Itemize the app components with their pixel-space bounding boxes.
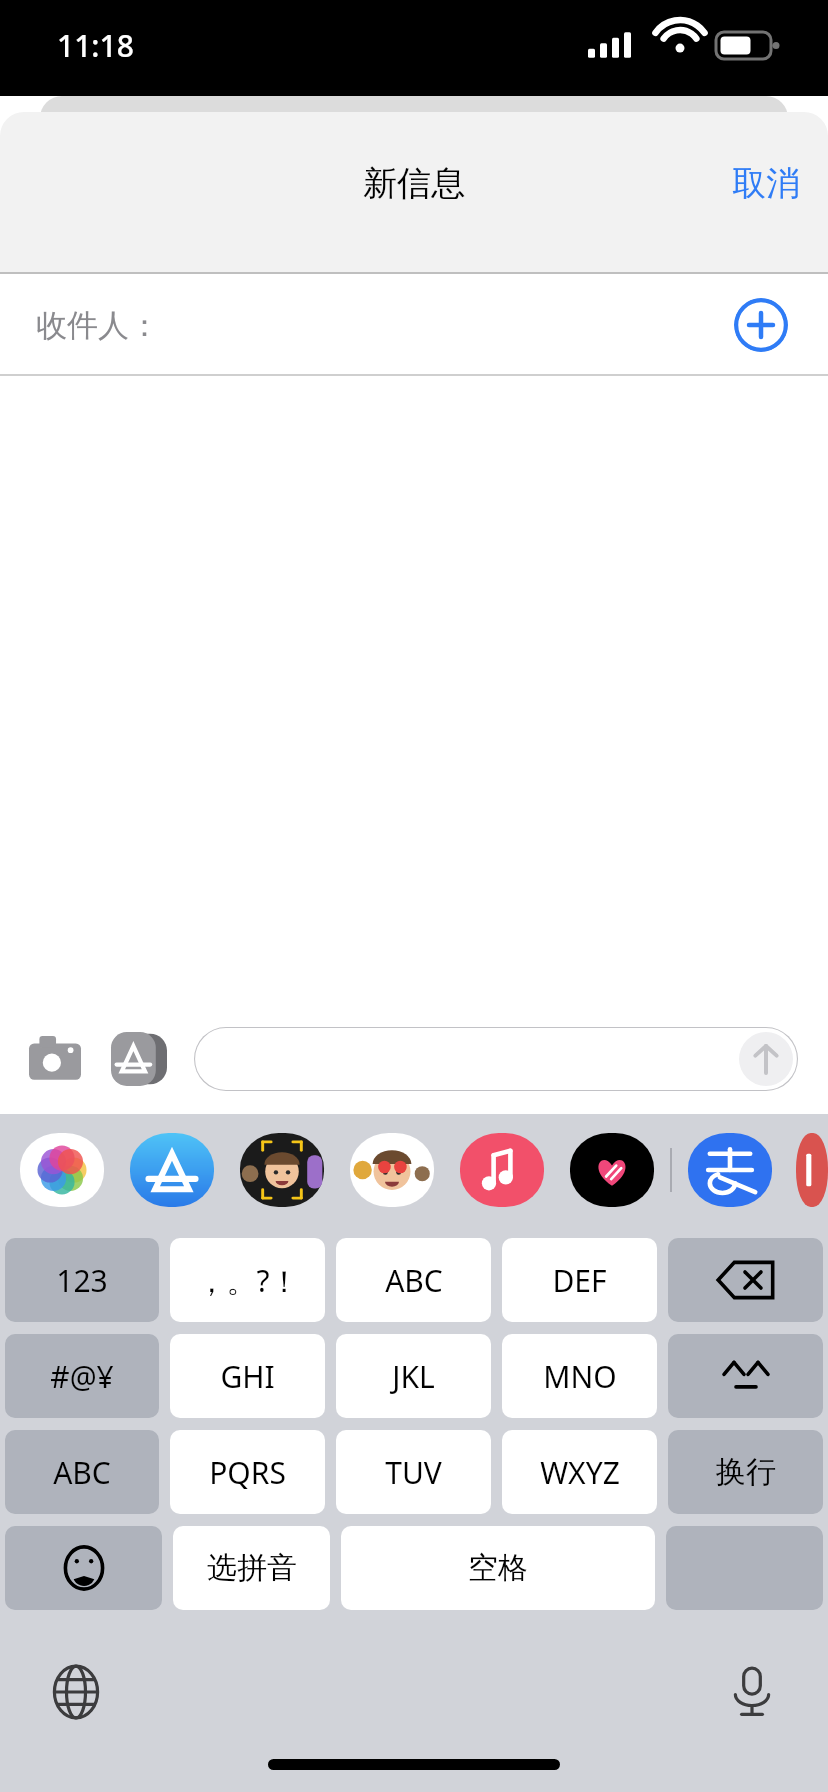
button[interactable]: Music [458,1132,546,1208]
button[interactable]: JKL [336,1334,491,1418]
staticText: TUV [385,1452,442,1493]
staticText: 取消 [732,162,800,205]
button[interactable]: 空格 [341,1526,655,1610]
button[interactable]: Memoji stickers [238,1132,326,1208]
staticText: 123 [56,1260,108,1301]
staticText: 空格 [468,1549,528,1587]
button[interactable]: WXYZ [502,1430,657,1514]
staticText: PQRS [209,1452,286,1493]
button[interactable]: Backspace [668,1238,823,1322]
staticText: ，。?！ [196,1260,300,1301]
button[interactable]: App Store [128,1132,216,1208]
button[interactable]: Camera [22,1026,88,1092]
button[interactable]: TUV [336,1430,491,1514]
button[interactable]: 选拼音 [173,1526,330,1610]
staticText: MNO [543,1356,617,1397]
staticText: WXYZ [540,1452,620,1493]
staticText: #@¥ [50,1356,114,1397]
button[interactable]: GHI [170,1334,325,1418]
button[interactable]: Shift [668,1334,823,1418]
staticText: DEF [552,1260,607,1301]
button[interactable]: #@¥ [5,1334,159,1418]
button[interactable]: More [796,1132,828,1208]
button[interactable]: MNO [502,1334,657,1418]
button[interactable]: Memoji [348,1132,436,1208]
staticText: 新信息 [363,162,465,205]
button[interactable]: Emoji [5,1526,162,1610]
staticText: 选拼音 [207,1549,297,1587]
button[interactable]: Dictation [716,1656,788,1728]
button[interactable]: Alipay [686,1132,774,1208]
button[interactable]: ABC [336,1238,491,1322]
button[interactable]: ，。?！ [170,1238,325,1322]
button[interactable]: DEF [502,1238,657,1322]
button[interactable]: 123 [5,1238,159,1322]
button[interactable]: Switch keyboard [40,1656,112,1728]
staticText: 11:18 [57,25,134,66]
staticText: ABC [385,1260,443,1301]
button[interactable]: Send [739,1032,793,1086]
staticText: JKL [392,1356,435,1397]
button[interactable]: Add recipient [734,298,788,352]
button[interactable]: 取消 [718,154,814,213]
staticText: ABC [53,1452,111,1493]
button[interactable]: Send [194,1027,798,1091]
staticText: GHI [220,1356,275,1397]
button[interactable]: ABC [5,1430,159,1514]
button[interactable]: Apps [106,1026,172,1092]
button[interactable]: Photos [18,1132,106,1208]
button[interactable]: 换行 [668,1430,823,1514]
staticText: 换行 [716,1453,776,1491]
button[interactable]: Fitness [568,1132,656,1208]
staticText: 收件人： [36,306,160,345]
button[interactable]: PQRS [170,1430,325,1514]
